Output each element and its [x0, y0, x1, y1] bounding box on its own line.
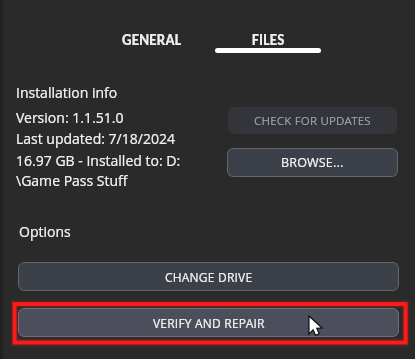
staticText: FILES	[252, 31, 285, 49]
staticText: \Game Pass Stuff	[16, 171, 128, 190]
staticText: Last updated: 7/18/2024	[16, 129, 175, 148]
staticText: 16.97 GB - Installed to: D:	[16, 151, 181, 170]
button[interactable]: BROWSE...	[227, 148, 398, 177]
staticText: Options	[19, 222, 71, 241]
other: Pointer	[0, 0, 415, 359]
button[interactable]: FILES	[215, 31, 321, 53]
staticText: Installation info	[16, 83, 118, 102]
staticText: GENERAL	[122, 31, 182, 49]
button[interactable]: VERIFY AND REPAIR	[18, 308, 399, 337]
staticText: CHANGE DRIVE	[165, 269, 253, 285]
button[interactable]: CHECK FOR UPDATES	[228, 107, 397, 134]
staticText: CHECK FOR UPDATES	[254, 113, 371, 129]
button[interactable]: CHANGE DRIVE	[18, 262, 399, 291]
button[interactable]: GENERAL	[112, 31, 192, 53]
staticText: Version: 1.1.51.0	[16, 108, 124, 127]
staticText: BROWSE...	[281, 154, 344, 171]
staticText: VERIFY AND REPAIR	[153, 315, 265, 331]
